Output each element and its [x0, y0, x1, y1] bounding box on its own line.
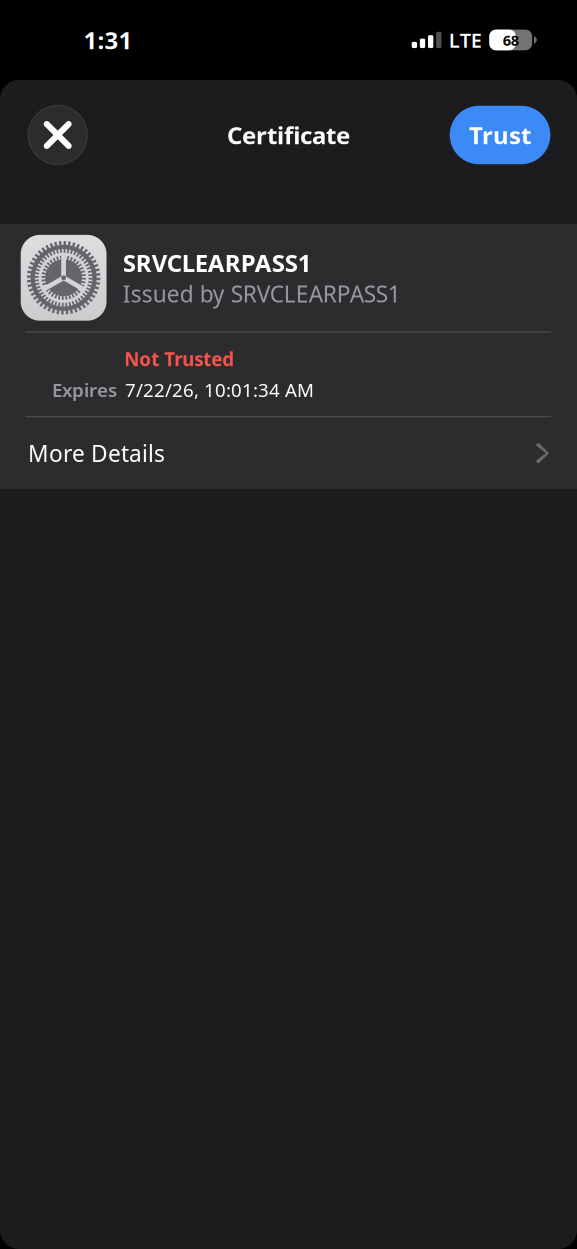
button[interactable]: Close	[28, 105, 87, 165]
staticText: Certificate	[227, 119, 350, 151]
staticText: More Details	[28, 438, 165, 468]
staticText: Trust	[469, 119, 531, 151]
staticText: Issued by SRVCLEARPASS1	[123, 279, 401, 309]
button[interactable]: More Details	[0, 417, 577, 489]
staticText: LTE	[449, 27, 482, 53]
button[interactable]: Trust	[450, 106, 550, 164]
staticText: 1:31	[83, 24, 132, 56]
staticText: Not Trusted	[124, 347, 234, 371]
staticText: SRVCLEARPASS1	[123, 247, 312, 279]
staticText: Expires	[52, 377, 117, 402]
staticText: 68	[503, 30, 519, 50]
staticText: 7/22/26, 10:01:34 AM	[125, 377, 314, 402]
